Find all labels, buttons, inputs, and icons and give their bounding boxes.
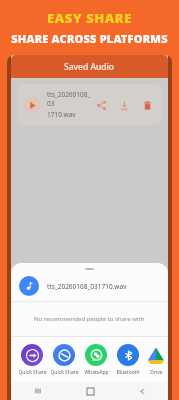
button[interactable]: Delete <box>140 98 154 112</box>
staticText: No recommended people to share with <box>34 315 145 323</box>
button[interactable]: Download <box>117 98 131 112</box>
button[interactable]: Drive <box>144 342 168 378</box>
button[interactable]: Back <box>116 382 168 400</box>
button[interactable]: Quick Share <box>48 342 80 378</box>
button[interactable]: Bluetooth <box>112 342 144 378</box>
staticText: Saved Audio <box>64 61 115 73</box>
button[interactable]: tts_20260108_031710.wav <box>11 271 168 301</box>
staticText: Quick Share <box>50 369 79 376</box>
staticText: EASY SHARE <box>0 9 179 27</box>
staticText: Quick Share <box>18 369 47 376</box>
button[interactable]: Play <box>23 96 41 114</box>
staticText: tts_20260108_03 <box>47 90 94 108</box>
staticText: Bluetooth <box>116 369 140 376</box>
button[interactable]: Recents <box>11 382 64 400</box>
button[interactable]: Play <box>17 84 162 125</box>
staticText: WhatsApp <box>84 369 109 376</box>
button[interactable]: WhatsApp <box>80 342 112 378</box>
staticText: 1710.wav <box>47 110 76 119</box>
staticText: SHARE ACROSS PLATFORMS <box>0 31 179 46</box>
button[interactable]: Quick Share <box>16 342 48 378</box>
staticText: tts_20260108_031710.wav <box>47 282 127 291</box>
staticText: Drive <box>150 369 163 376</box>
button[interactable]: Share <box>94 98 108 112</box>
button[interactable]: Home <box>64 382 116 400</box>
